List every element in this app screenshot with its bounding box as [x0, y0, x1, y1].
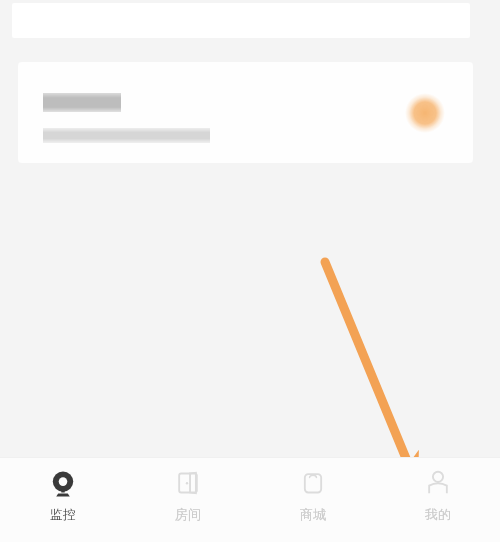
button[interactable]: 房间: [125, 458, 250, 542]
staticText: 房间: [175, 506, 201, 522]
staticText: 监控: [50, 506, 76, 522]
staticText: 商城: [300, 506, 326, 522]
button[interactable]: [18, 62, 473, 163]
button[interactable]: 监控: [0, 458, 125, 542]
button[interactable]: 我的: [375, 458, 500, 542]
button[interactable]: 商城: [250, 458, 375, 542]
staticText: 我的: [425, 506, 451, 522]
